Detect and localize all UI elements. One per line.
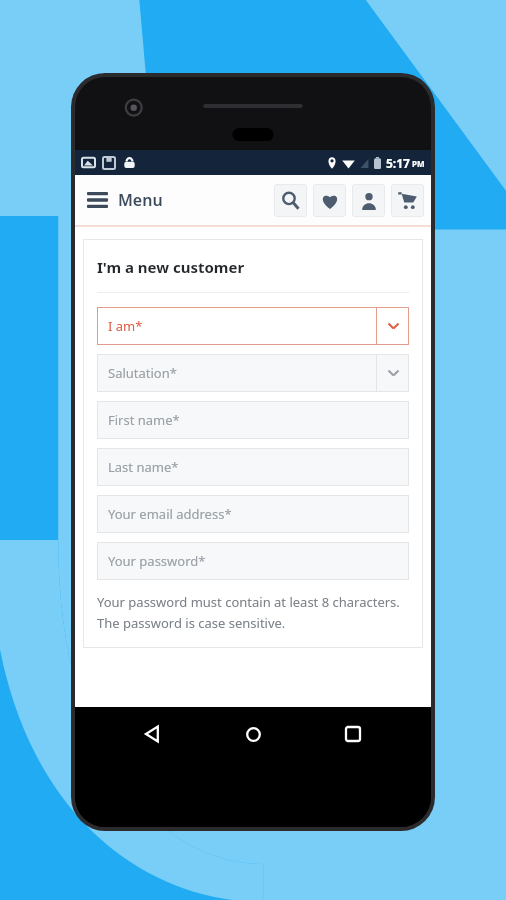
button[interactable]: Menu: [79, 183, 171, 217]
staticText: PM: [412, 158, 425, 169]
button[interactable]: Your password*: [97, 542, 409, 580]
button[interactable]: First name*: [97, 401, 409, 439]
staticText: Your password*: [108, 552, 206, 570]
button[interactable]: Your email address*: [97, 495, 409, 533]
staticText: I'm a new customer: [97, 257, 245, 277]
button[interactable]: Recent apps: [331, 712, 375, 756]
staticText: Menu: [118, 189, 163, 211]
staticText: Your password must contain at least 8 ch…: [97, 593, 409, 611]
staticText: I am*: [108, 317, 143, 335]
button[interactable]: Search: [274, 184, 307, 217]
staticText: First name*: [108, 411, 180, 429]
button[interactable]: I am*: [97, 307, 409, 345]
button[interactable]: Account: [352, 184, 385, 217]
button[interactable]: Back: [131, 712, 175, 756]
staticText: 5:17: [386, 155, 410, 171]
button[interactable]: Wishlist: [313, 184, 346, 217]
button[interactable]: Salutation*: [97, 354, 409, 392]
staticText: Salutation*: [108, 364, 177, 382]
staticText: The password is case sensitive.: [97, 614, 409, 632]
button[interactable]: Last name*: [97, 448, 409, 486]
staticText: Your email address*: [108, 505, 232, 523]
button[interactable]: Shopping cart: [391, 184, 424, 217]
staticText: Last name*: [108, 458, 179, 476]
button[interactable]: Home: [231, 712, 275, 756]
